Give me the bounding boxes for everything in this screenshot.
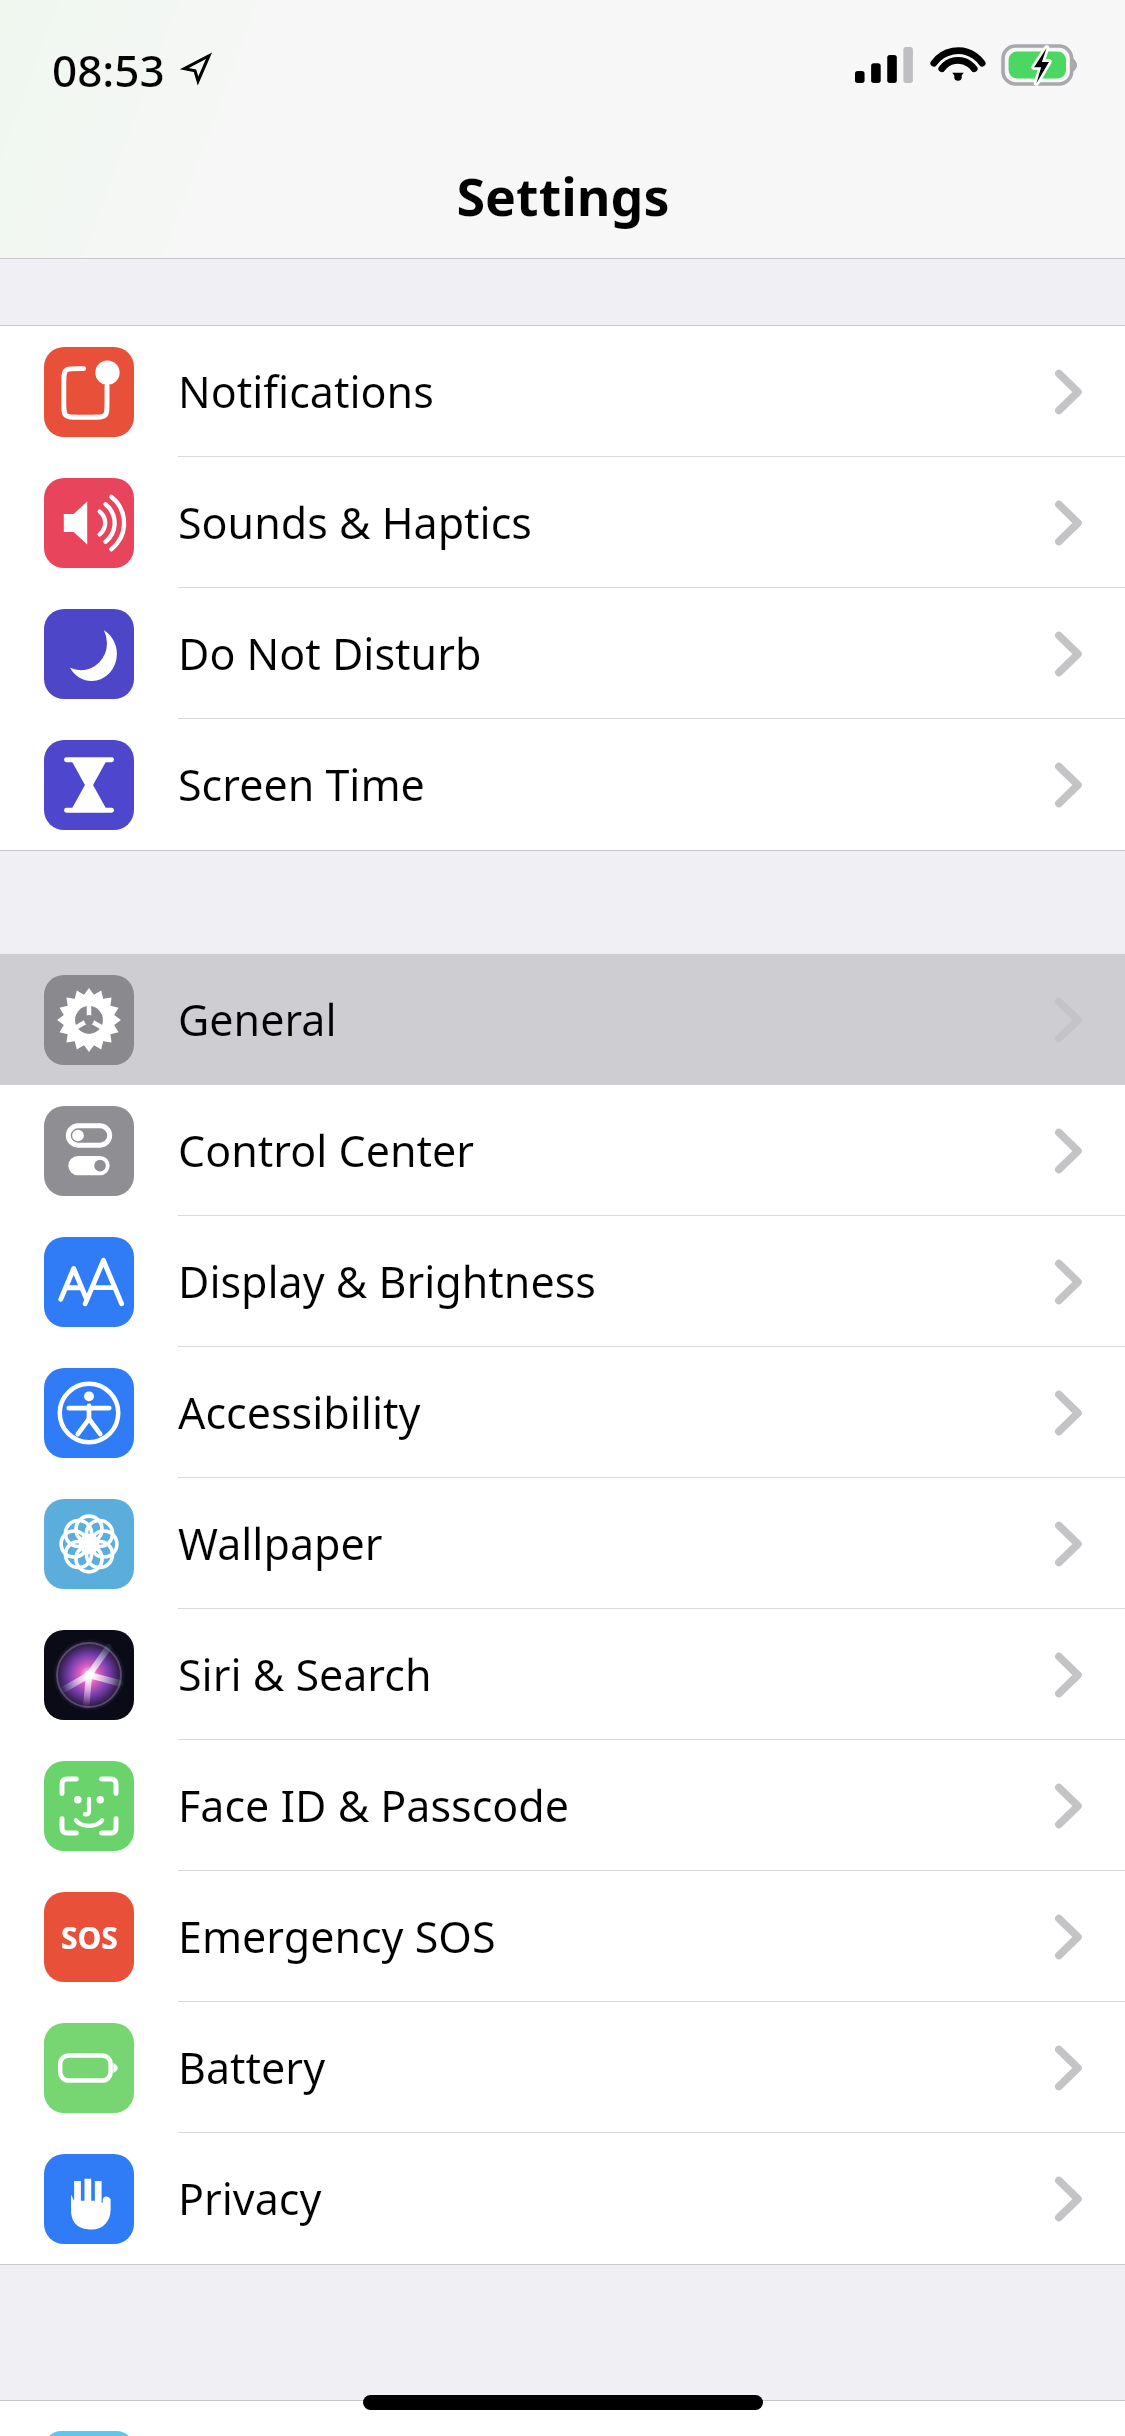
button[interactable]: Privacy <box>0 2133 1125 2264</box>
staticText: Control Center <box>178 1121 475 1180</box>
staticText: Emergency SOS <box>178 1907 496 1966</box>
other: Open Privacy <box>1055 2177 1081 2221</box>
other: Open Do Not Disturb <box>1055 632 1081 676</box>
button[interactable] <box>0 2401 1125 2436</box>
staticText: Sounds & Haptics <box>178 493 532 552</box>
button[interactable]: Control Center <box>0 1085 1125 1216</box>
staticText: Do Not Disturb <box>178 624 482 683</box>
button[interactable]: Notifications <box>0 326 1125 457</box>
other: Open Screen Time <box>1055 763 1081 807</box>
other: Open Notifications <box>1055 370 1081 414</box>
other: Open Wallpaper <box>1055 1522 1081 1566</box>
staticText: Privacy <box>178 2169 322 2228</box>
staticText: Wallpaper <box>178 1514 383 1573</box>
other: Open Battery <box>1055 2046 1081 2090</box>
button[interactable]: SOS <box>0 1871 1125 2002</box>
other: Open Siri & Search <box>1055 1653 1081 1697</box>
button[interactable]: Screen Time <box>0 719 1125 850</box>
staticText: Battery <box>178 2038 326 2097</box>
staticText: Screen Time <box>178 755 425 814</box>
other: Open General <box>1055 998 1081 1042</box>
button[interactable]: General <box>0 954 1125 1085</box>
staticText: Settings <box>456 160 670 231</box>
staticText: 08:53 <box>52 40 165 100</box>
other: Open Emergency SOS <box>1055 1915 1081 1959</box>
button[interactable]: Sounds & Haptics <box>0 457 1125 588</box>
button[interactable]: Do Not Disturb <box>0 588 1125 719</box>
button[interactable]: Battery <box>0 2002 1125 2133</box>
other: Open Face ID & Passcode <box>1055 1784 1081 1828</box>
staticText: Siri & Search <box>178 1645 432 1704</box>
staticText: General <box>178 990 337 1049</box>
other: Open Sounds & Haptics <box>1055 501 1081 545</box>
button[interactable]: Display & Brightness <box>0 1216 1125 1347</box>
other: Open Control Center <box>1055 1129 1081 1173</box>
other: Open Accessibility <box>1055 1391 1081 1435</box>
staticText: SOS <box>61 1917 118 1958</box>
other: Open Display & Brightness <box>1055 1260 1081 1304</box>
staticText: Face ID & Passcode <box>178 1776 569 1835</box>
staticText: Notifications <box>178 362 434 421</box>
button[interactable]: Wallpaper <box>0 1478 1125 1609</box>
button[interactable]: Siri & Search <box>0 1609 1125 1740</box>
staticText: Display & Brightness <box>178 1252 596 1311</box>
button[interactable]: Accessibility <box>0 1347 1125 1478</box>
staticText: Accessibility <box>178 1383 421 1442</box>
button[interactable]: Face ID & Passcode <box>0 1740 1125 1871</box>
